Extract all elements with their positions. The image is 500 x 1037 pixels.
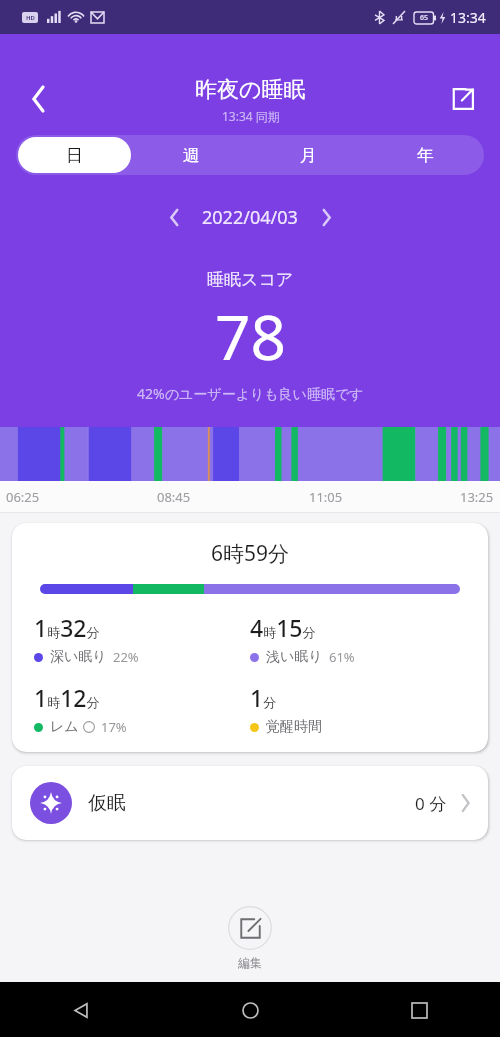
staticText: 61% <box>329 648 355 666</box>
button[interactable]: 6時59分 <box>12 523 488 752</box>
staticText: 日 <box>66 145 83 166</box>
staticText: 浅い眠り <box>266 648 323 666</box>
staticText: 22% <box>113 648 139 666</box>
staticText: 42%のユーザーよりも良い睡眠です <box>137 384 364 403</box>
staticText: 11:05 <box>309 488 343 506</box>
staticText: 1時32分 <box>34 612 100 643</box>
button[interactable]: Next day <box>308 199 344 235</box>
staticText: 睡眠スコア <box>207 269 294 290</box>
staticText: 仮眠 <box>88 791 126 815</box>
button[interactable]: 4時15分 <box>250 612 466 666</box>
staticText: 17% <box>101 718 127 736</box>
button[interactable]: Back <box>58 987 104 1033</box>
button[interactable]: 週 <box>135 137 248 173</box>
button[interactable]: 1時32分 <box>34 612 250 666</box>
button[interactable]: Recents <box>396 987 442 1033</box>
staticText: 08:45 <box>157 488 191 506</box>
button[interactable]: Share <box>442 78 484 120</box>
staticText: 覚醒時間 <box>266 718 322 736</box>
staticText: 1分 <box>250 682 277 713</box>
button[interactable]: 日 <box>18 137 131 173</box>
staticText: 深い眠り <box>50 648 107 666</box>
staticText: 4時15分 <box>250 612 316 643</box>
button[interactable]: Back <box>18 78 60 120</box>
staticText: 年 <box>417 145 434 166</box>
button[interactable]: Previous day <box>156 199 192 235</box>
staticText: 月 <box>300 145 317 166</box>
staticText: 2022/04/03 <box>202 205 298 230</box>
staticText: 編集 <box>238 955 262 970</box>
button[interactable]: 編集 <box>0 906 500 970</box>
button[interactable]: 年 <box>369 137 482 173</box>
staticText: HD <box>26 14 35 22</box>
staticText: 昨夜の睡眠 <box>195 76 306 104</box>
button[interactable]: 1時12分 <box>34 682 250 736</box>
staticText: 06:25 <box>6 488 40 506</box>
staticText: 13:34 同期 <box>222 108 280 124</box>
button[interactable]: 仮眠 <box>12 766 488 840</box>
staticText: 週 <box>183 145 200 166</box>
staticText: レム <box>50 718 79 736</box>
staticText: 78 <box>215 294 286 378</box>
button[interactable]: Home <box>227 987 273 1033</box>
staticText: 6時59分 <box>12 539 488 568</box>
staticText: 0 分 <box>415 792 447 815</box>
staticText: 13:34 <box>450 8 486 27</box>
staticText: 1時12分 <box>34 682 100 713</box>
staticText: 65 <box>420 13 429 23</box>
button[interactable]: 1分 <box>250 682 466 736</box>
button[interactable]: 月 <box>252 137 365 173</box>
staticText: 13:25 <box>460 488 494 506</box>
